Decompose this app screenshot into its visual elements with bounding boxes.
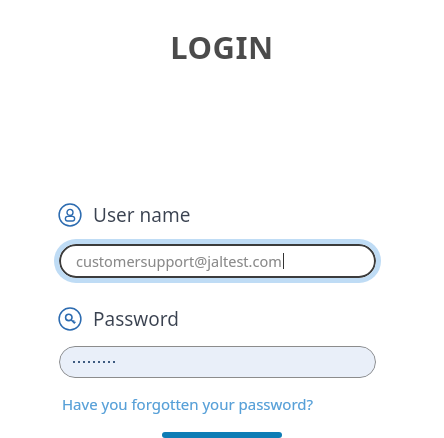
button[interactable] [59, 346, 376, 378]
button[interactable]: User name [58, 202, 191, 228]
button[interactable]: customersupport@jaltest.com [59, 244, 376, 278]
staticText: customersupport@jaltest.com [76, 251, 282, 271]
button[interactable]: Password [58, 306, 179, 332]
button[interactable]: Login [162, 432, 282, 438]
staticText: User name [93, 202, 191, 228]
staticText: LOGIN [0, 26, 444, 68]
staticText: Password [93, 306, 179, 332]
button[interactable]: Have you forgotten your password? [62, 394, 314, 414]
staticText: Have you forgotten your password? [62, 394, 314, 414]
